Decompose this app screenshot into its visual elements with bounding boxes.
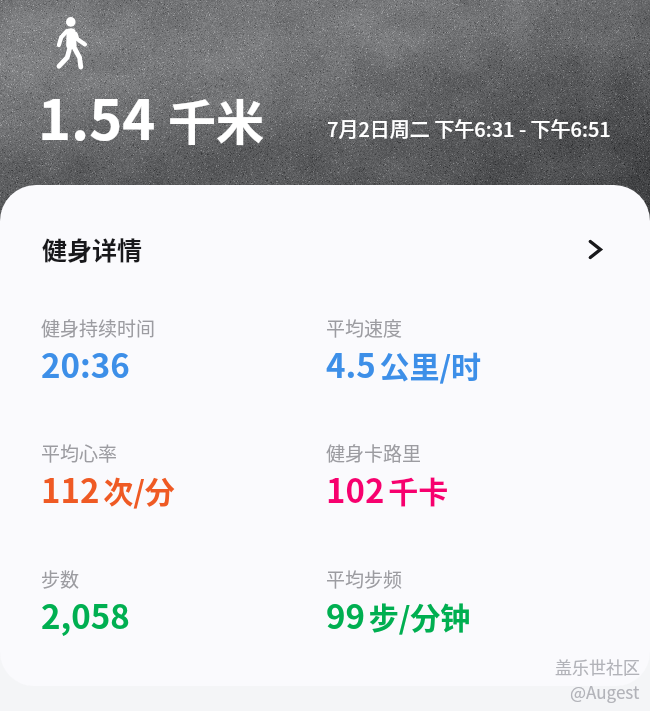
staticText: 盖乐世社区	[555, 654, 640, 679]
button[interactable]: 健身卡路里	[285, 423, 650, 531]
staticText: 平均步频	[326, 565, 403, 593]
staticText: @Augest	[570, 679, 640, 704]
button[interactable]: 步数	[0, 549, 285, 657]
button[interactable]: 健身详情	[0, 185, 650, 313]
staticText: 20:36	[41, 340, 130, 388]
other: Walking	[56, 16, 86, 69]
button[interactable]: 平均速度	[285, 298, 650, 406]
staticText: 健身详情	[42, 231, 143, 267]
staticText: 健身持续时间	[41, 314, 156, 342]
staticText: 4.5 公里/时	[326, 340, 482, 388]
staticText: 112 次/分	[41, 465, 175, 513]
staticText: 7月2日周二 下午6:31 - 下午6:51	[327, 114, 611, 143]
staticText: 平均心率	[41, 439, 118, 467]
staticText: 1.54 千米	[38, 75, 265, 156]
button[interactable]: 平均步频	[285, 549, 650, 657]
staticText: 平均速度	[326, 314, 403, 342]
staticText: 健身卡路里	[326, 439, 422, 467]
staticText: 步数	[41, 565, 80, 593]
button[interactable]: 平均心率	[0, 423, 285, 531]
staticText: 99 步/分钟	[326, 591, 471, 639]
button[interactable]: 健身持续时间	[0, 298, 285, 406]
staticText: 2,058	[41, 591, 130, 639]
staticText: 102 千卡	[326, 465, 449, 513]
